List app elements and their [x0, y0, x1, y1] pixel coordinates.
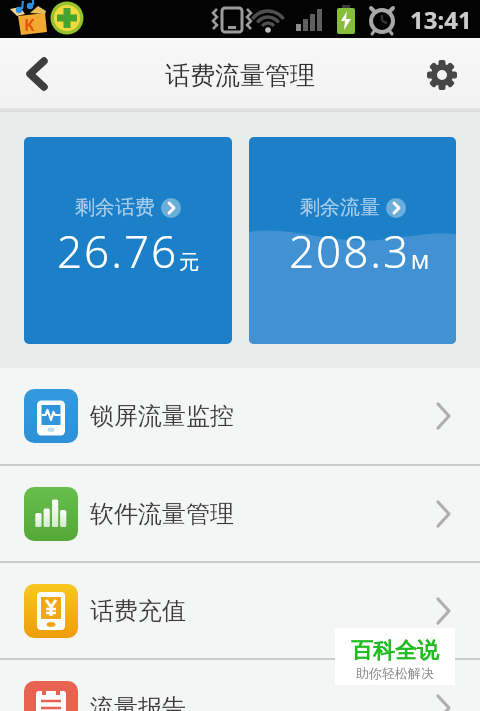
button[interactable]: 锁屏流量监控 [0, 368, 480, 464]
button[interactable]: 剩余流量 [249, 137, 456, 344]
staticText: M [411, 248, 430, 275]
staticText: 剩余流量 [300, 195, 380, 220]
staticText: 锁屏流量监控 [90, 401, 234, 431]
staticText: 13:41 [410, 3, 472, 36]
button[interactable] [0, 38, 60, 112]
button[interactable]: 软件流量管理 [0, 466, 480, 561]
staticText: 软件流量管理 [90, 499, 234, 529]
button[interactable] [416, 38, 480, 112]
staticText: 助你轻松解决 [356, 665, 434, 681]
button[interactable]: 流量报告 [0, 660, 480, 711]
staticText: 流量报告 [90, 693, 186, 711]
button[interactable]: 话费充值 [0, 563, 480, 658]
button[interactable]: 百科全说 [335, 628, 455, 685]
button[interactable]: 剩余话费 [24, 137, 232, 344]
staticText: 208.3 [289, 221, 411, 281]
staticText: 26.76 [57, 221, 179, 281]
staticText: 百科全说 [351, 637, 439, 665]
staticText: 元 [179, 250, 199, 275]
staticText: 话费充值 [90, 596, 186, 626]
staticText: 剩余话费 [75, 195, 155, 220]
staticText: K [24, 14, 35, 36]
staticText: 话费流量管理 [165, 60, 315, 91]
